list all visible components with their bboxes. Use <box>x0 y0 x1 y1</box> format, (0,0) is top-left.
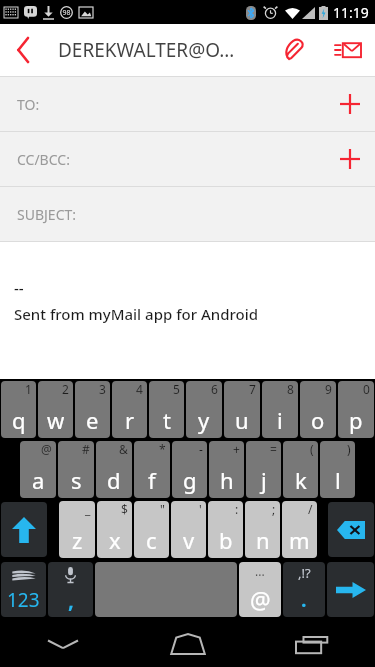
staticText: . <box>301 586 307 613</box>
staticText: 98 <box>62 8 71 18</box>
button[interactable]: ' <box>171 501 206 558</box>
button[interactable]: Backspace <box>328 502 374 557</box>
button[interactable]: @ <box>20 441 56 498</box>
staticText: TO: <box>17 95 40 114</box>
staticText: CC/BCC: <box>17 150 70 169</box>
button[interactable]: + <box>209 441 244 498</box>
staticText: o <box>311 405 325 435</box>
staticText: d <box>107 465 121 495</box>
button[interactable]: Shift <box>1 502 47 557</box>
staticText: $ <box>121 501 128 517</box>
staticText: ... <box>255 563 265 579</box>
staticText: v <box>183 525 195 555</box>
button[interactable]: 2 <box>38 381 73 438</box>
button[interactable]: ,!? <box>283 562 325 617</box>
staticText: 123 <box>7 587 40 613</box>
button[interactable]: 3 <box>75 381 110 438</box>
button[interactable]: 9 <box>300 381 336 438</box>
staticText: t <box>163 405 171 435</box>
button[interactable]: 6 <box>186 381 222 438</box>
button[interactable]: Send <box>321 24 375 76</box>
button[interactable]: Attach file <box>267 24 321 76</box>
staticText: @ <box>41 441 52 457</box>
button[interactable]: * <box>134 441 170 498</box>
staticText: ' <box>199 501 202 517</box>
staticText: e <box>86 405 99 435</box>
button[interactable]: Space <box>95 562 237 617</box>
staticText: 8 <box>287 381 294 397</box>
button[interactable]: & <box>96 441 132 498</box>
staticText: k <box>295 465 307 495</box>
button[interactable]: ; <box>245 501 280 558</box>
staticText: f <box>148 465 156 495</box>
staticText: / <box>308 501 313 517</box>
button[interactable]: _ <box>59 501 95 558</box>
staticText: @ <box>250 584 271 615</box>
button[interactable]: " <box>134 501 169 558</box>
staticText: Sent from myMail app for Android <box>14 304 258 324</box>
staticText: j <box>261 465 267 495</box>
staticText: 5 <box>173 381 180 397</box>
staticText: w <box>47 405 65 435</box>
staticText: + <box>233 441 240 457</box>
button[interactable]: Add recipient <box>325 79 375 129</box>
staticText: m <box>289 525 310 555</box>
button[interactable]: 7 <box>224 381 260 438</box>
button[interactable]: 1 <box>1 381 36 438</box>
staticText: q <box>12 405 26 435</box>
button[interactable]: Comma, voice input <box>48 562 93 617</box>
staticText: s <box>71 465 82 495</box>
staticText: ,!? <box>298 564 311 582</box>
button[interactable]: : <box>208 501 243 558</box>
staticText: h <box>220 465 234 495</box>
staticText: & <box>119 441 128 457</box>
button[interactable]: Numbers and symbols <box>1 562 46 617</box>
staticText: c <box>146 525 157 555</box>
staticText: ; <box>272 501 276 517</box>
button[interactable]: TO: <box>0 77 375 131</box>
button[interactable]: 8 <box>262 381 298 438</box>
button[interactable]: Hide keyboard <box>0 620 125 667</box>
button[interactable]: Recent apps <box>250 620 375 667</box>
staticText: 11:19 <box>333 3 369 22</box>
staticText: , <box>68 586 74 615</box>
staticText: 0 <box>363 381 370 397</box>
button[interactable]: 5 <box>149 381 184 438</box>
button[interactable]: SUBJECT: <box>0 187 375 241</box>
staticText: ( <box>310 441 314 457</box>
staticText: * <box>159 441 166 457</box>
button[interactable]: 0 <box>338 381 374 438</box>
button[interactable]: = <box>246 441 281 498</box>
staticText: g <box>183 465 197 495</box>
staticText: n <box>256 525 270 555</box>
staticText: SUBJECT: <box>17 205 77 224</box>
button[interactable]: CC/BCC: <box>0 132 375 186</box>
button[interactable]: - <box>172 441 207 498</box>
staticText: ) <box>347 441 351 457</box>
staticText: 1 <box>25 381 32 397</box>
staticText: -- <box>14 278 24 298</box>
staticText: 4 <box>136 381 143 397</box>
staticText: b <box>219 525 233 555</box>
staticText: - <box>199 441 203 457</box>
button[interactable]: Back <box>0 26 48 74</box>
staticText: p <box>349 405 363 435</box>
staticText: l <box>335 465 341 495</box>
staticText: = <box>270 441 277 457</box>
staticText: 7 <box>249 381 256 397</box>
button[interactable]: Add recipient <box>325 134 375 184</box>
staticText: DEREKWALTER@O… <box>58 37 235 63</box>
staticText: " <box>160 501 165 517</box>
button[interactable]: $ <box>97 501 132 558</box>
button[interactable]: Enter <box>327 562 374 617</box>
button[interactable]: ) <box>320 441 355 498</box>
button[interactable]: ... <box>239 562 281 617</box>
button[interactable]: ( <box>283 441 318 498</box>
button[interactable]: # <box>58 441 94 498</box>
button[interactable]: / <box>282 501 317 558</box>
button[interactable]: Home <box>125 620 250 667</box>
staticText: 3 <box>99 381 106 397</box>
staticText: : <box>235 501 239 517</box>
staticText: # <box>82 441 90 457</box>
button[interactable]: 4 <box>112 381 147 438</box>
